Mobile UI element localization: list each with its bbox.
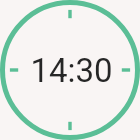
button[interactable]: Clock face showing 14:30 <box>0 0 140 140</box>
staticText: 14:30 <box>30 51 113 90</box>
